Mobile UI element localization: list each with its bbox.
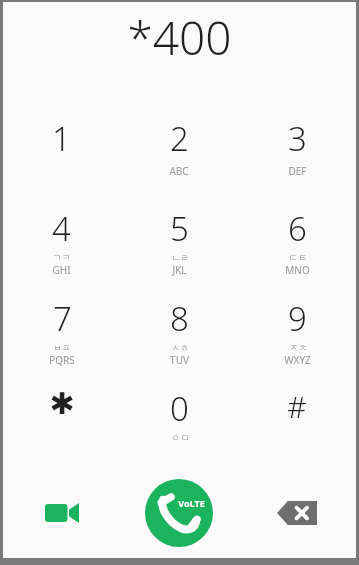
staticText: 0	[170, 386, 189, 431]
button[interactable]: ✱	[3, 378, 120, 468]
button[interactable]: 2	[120, 108, 238, 198]
staticText: ✱	[49, 386, 75, 421]
button[interactable]: #	[238, 378, 356, 468]
staticText: *400	[127, 6, 232, 69]
button[interactable]: 1	[3, 108, 120, 198]
staticText: ㅂㅍ	[53, 342, 71, 353]
staticText: 4	[52, 206, 71, 251]
staticText: 3	[288, 116, 307, 161]
staticText: MNO	[285, 263, 310, 277]
button[interactable]: 3	[238, 108, 356, 198]
button[interactable]: 8	[120, 288, 238, 378]
staticText: 6	[288, 206, 307, 251]
staticText: JKL	[172, 263, 187, 277]
staticText: 8	[170, 296, 189, 341]
staticText: GHI	[52, 263, 71, 277]
button[interactable]: 9	[238, 288, 356, 378]
button[interactable]: Video call	[3, 468, 120, 558]
staticText: TUV	[170, 353, 189, 367]
staticText: ㅇㅁ	[171, 432, 189, 443]
staticText: DEF	[288, 164, 307, 178]
button[interactable]: 7	[3, 288, 120, 378]
staticText: ㄴㄹ	[171, 252, 189, 263]
staticText: PQRS	[49, 353, 75, 367]
staticText: VoLTE	[178, 497, 205, 509]
button[interactable]: Backspace	[238, 468, 356, 558]
staticText: 1	[52, 116, 71, 161]
staticText: ㅅㅎ	[171, 342, 189, 353]
staticText: 9	[288, 296, 307, 341]
button[interactable]: Call	[145, 479, 213, 547]
button[interactable]: 0	[120, 378, 238, 468]
staticText: ㄱㅋ	[53, 252, 71, 263]
staticText: WXYZ	[284, 353, 311, 367]
staticText: 7	[53, 296, 72, 341]
staticText: ABC	[169, 164, 189, 178]
staticText: ㄷㅌ	[289, 252, 307, 263]
staticText: #	[287, 386, 307, 427]
staticText: 5	[170, 206, 189, 251]
staticText: ㅈㅊ	[289, 342, 307, 353]
button[interactable]: 6	[238, 198, 356, 288]
button[interactable]: 4	[3, 198, 120, 288]
button[interactable]: 5	[120, 198, 238, 288]
staticText: 2	[170, 116, 189, 161]
